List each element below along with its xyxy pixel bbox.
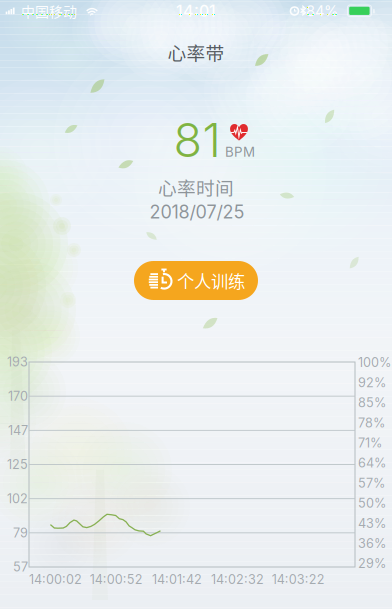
button[interactable]: 个人训练 <box>134 261 258 300</box>
staticText: 170 <box>8 388 28 404</box>
staticText: 36% <box>358 536 386 551</box>
staticText: 102 <box>7 491 28 506</box>
staticText: 中国移动 <box>21 1 77 21</box>
staticText: 14:01:42 <box>152 572 202 587</box>
staticText: 50% <box>358 495 386 511</box>
staticText: 81 <box>173 112 220 168</box>
staticText: 14:02:32 <box>211 572 264 587</box>
staticText: 125 <box>7 457 28 472</box>
staticText: 57% <box>358 475 385 491</box>
staticText: 57 <box>13 559 28 575</box>
staticText: 2018/07/25 <box>149 201 244 223</box>
staticText: 100% <box>358 355 391 370</box>
staticText: 79 <box>13 525 28 540</box>
staticText: 14:01 <box>176 1 216 21</box>
staticText: 84% <box>306 2 338 20</box>
staticText: 193 <box>7 354 28 370</box>
staticText: 心率时间 <box>158 173 234 200</box>
staticText: 71% <box>358 435 382 450</box>
staticText: 92% <box>358 375 386 390</box>
staticText: 147 <box>8 423 28 438</box>
staticText: 心率带 <box>167 38 224 65</box>
staticText: 14:00:52 <box>90 572 143 587</box>
staticText: 78% <box>358 415 385 430</box>
staticText: 85% <box>358 395 386 410</box>
staticText: 14:03:22 <box>272 572 325 587</box>
staticText: 个人训练 <box>177 268 245 293</box>
staticText: 43% <box>358 516 386 531</box>
staticText: 64% <box>358 455 386 471</box>
staticText: BPM <box>225 144 255 160</box>
staticText: 29% <box>358 556 386 571</box>
staticText: 14:00:02 <box>29 572 82 587</box>
